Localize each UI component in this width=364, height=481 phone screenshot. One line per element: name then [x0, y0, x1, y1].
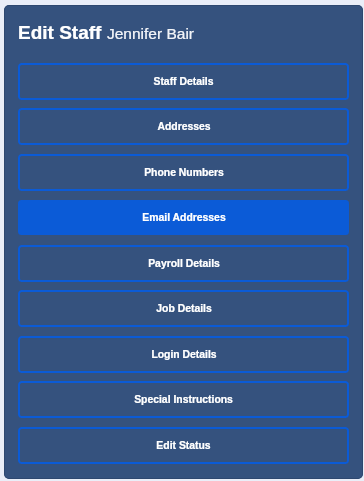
staticText: Login Details [151, 349, 217, 361]
button[interactable]: Edit Status [18, 427, 349, 464]
staticText: Staff Details [153, 76, 214, 88]
button[interactable]: Login Details [18, 336, 349, 373]
button[interactable]: Email Addresses [18, 200, 349, 235]
button[interactable]: Job Details [18, 290, 349, 327]
staticText: Phone Numbers [144, 167, 224, 179]
button[interactable]: Special Instructions [18, 381, 349, 418]
staticText: Jennifer Bair [107, 25, 195, 42]
staticText: Payroll Details [148, 258, 220, 270]
button[interactable]: Phone Numbers [18, 154, 349, 191]
staticText: Edit Status [156, 440, 211, 452]
staticText: Email Addresses [142, 212, 226, 224]
staticText: Edit Staff [18, 22, 102, 43]
staticText: Special Instructions [134, 394, 233, 406]
button[interactable]: Addresses [18, 108, 349, 145]
staticText: Job Details [156, 303, 212, 315]
button[interactable]: Payroll Details [18, 245, 349, 282]
staticText: Addresses [157, 121, 211, 133]
button[interactable]: Staff Details [18, 63, 349, 100]
